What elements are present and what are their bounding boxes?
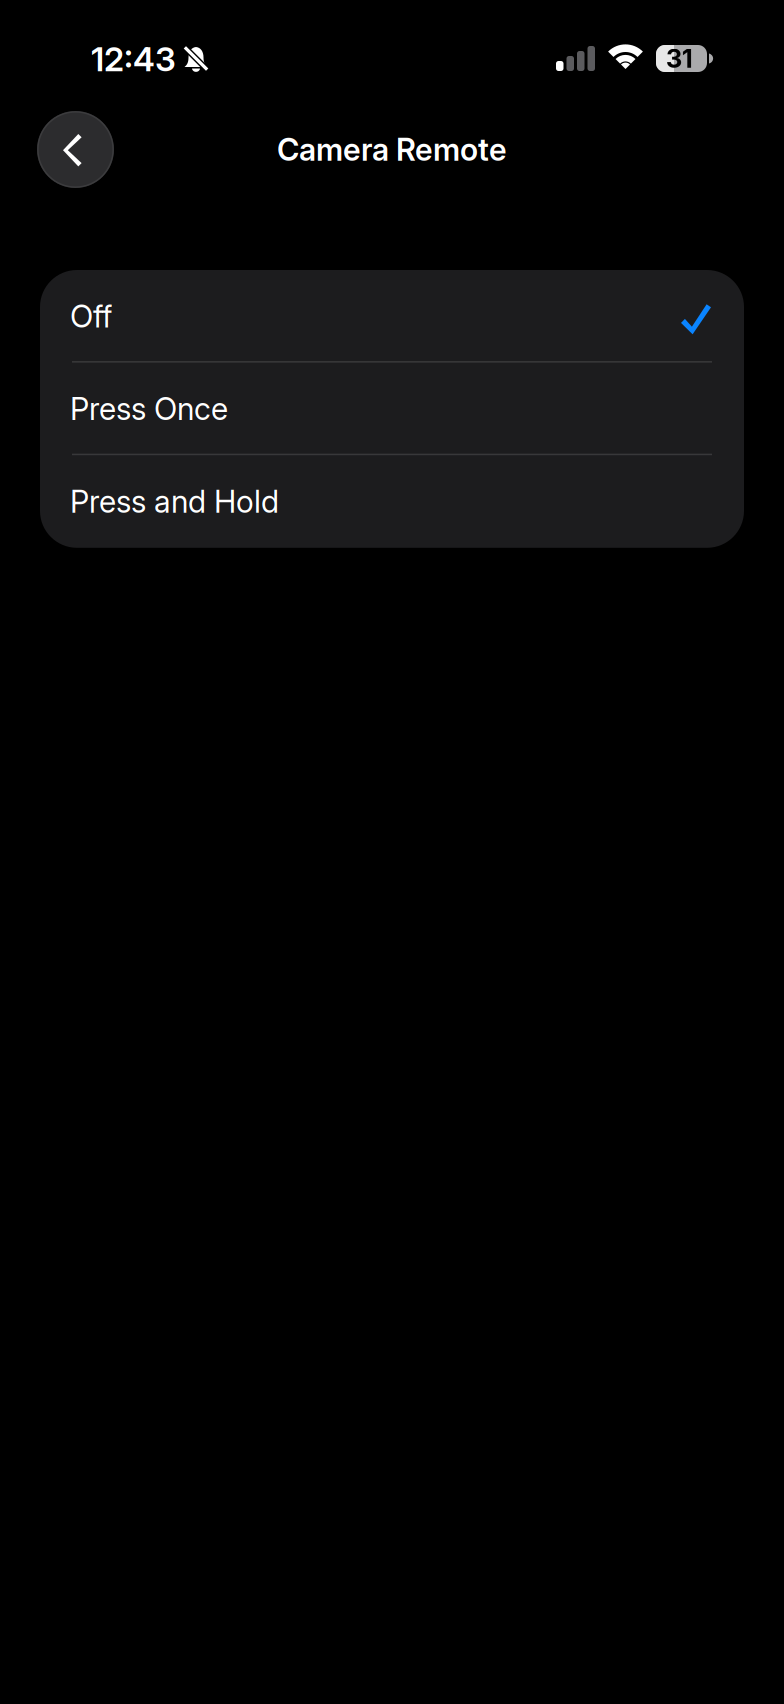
staticText: Camera Remote	[277, 131, 507, 168]
staticText: Off	[70, 298, 112, 334]
button[interactable]: Press and Hold	[40, 455, 744, 548]
button[interactable]: Press Once	[40, 363, 744, 455]
staticText: 12:43	[91, 39, 176, 79]
button[interactable]: Off	[40, 270, 744, 363]
button[interactable]: Back	[37, 111, 114, 188]
staticText: Press and Hold	[70, 483, 279, 520]
staticText: 31	[666, 44, 693, 73]
staticText: Press Once	[70, 391, 228, 427]
